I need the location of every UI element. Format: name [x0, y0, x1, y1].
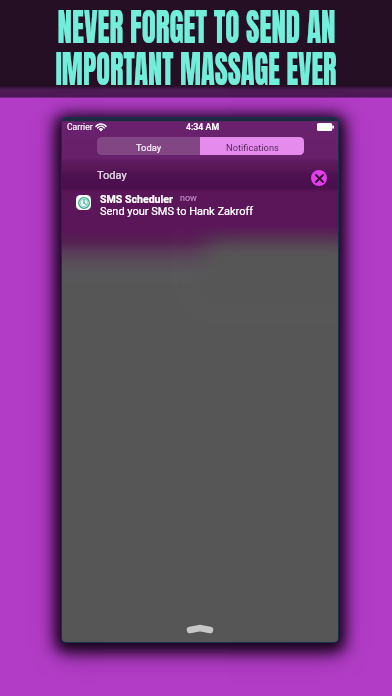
- staticText: Carrier: [67, 122, 93, 132]
- staticText: IMPORTANT MASSAGE EVER: [55, 41, 337, 97]
- staticText: Notifications: [226, 142, 279, 153]
- button[interactable]: Notifications: [200, 137, 304, 155]
- staticText: 4:34 AM: [186, 122, 220, 132]
- staticText: SMS Scheduler: [100, 193, 173, 205]
- staticText: Send your SMS to Hank Zakroff: [100, 205, 254, 218]
- button[interactable]: Today: [97, 137, 200, 155]
- staticText: now: [180, 193, 197, 204]
- button[interactable]: SMS Scheduler: [76, 194, 327, 234]
- staticText: Today: [136, 142, 162, 153]
- staticText: NEVER FORGET TO SEND AN: [57, 0, 335, 55]
- button[interactable]: Clear notifications: [311, 170, 327, 186]
- staticText: Today: [97, 169, 127, 182]
